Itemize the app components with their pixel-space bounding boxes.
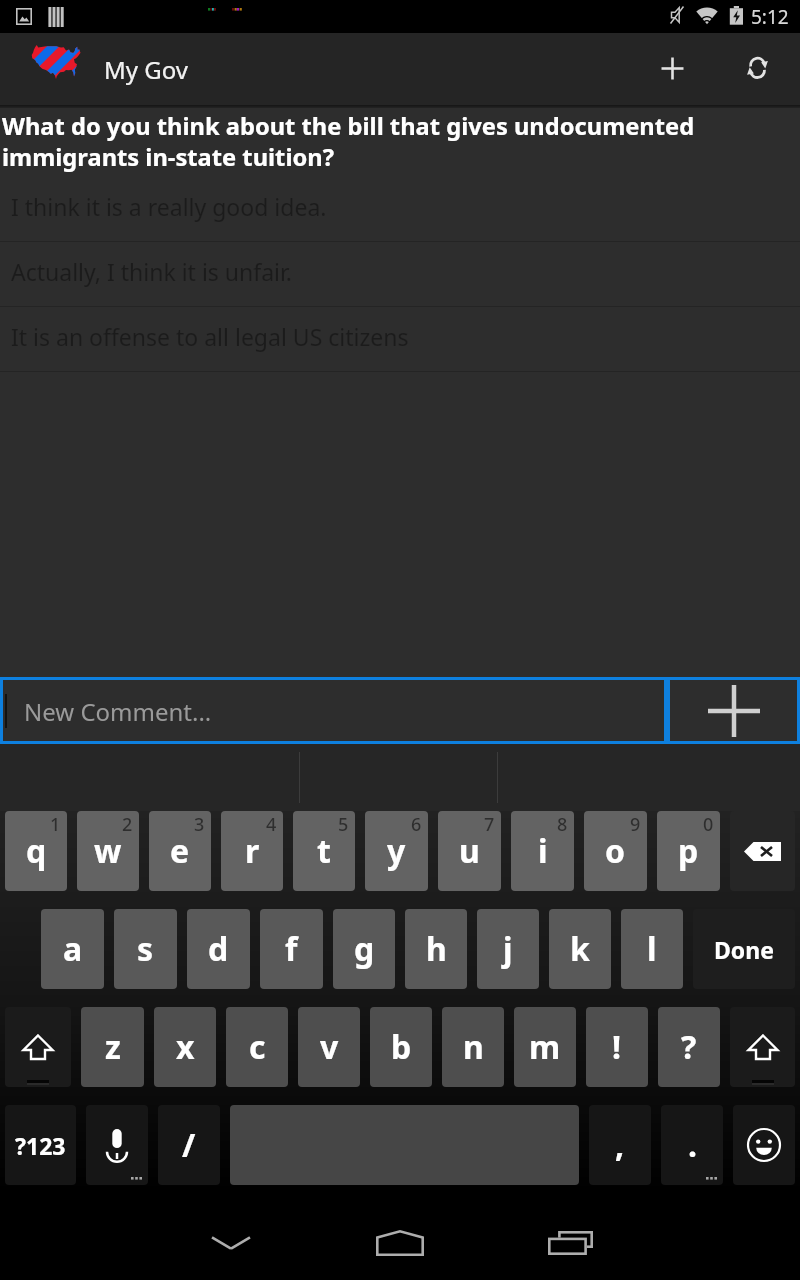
- staticText: 4: [266, 812, 277, 837]
- staticText: .: [688, 1123, 697, 1167]
- staticText: 5:12: [751, 4, 789, 30]
- staticText: What do you think about the bill that gi…: [2, 110, 796, 172]
- button[interactable]: u: [438, 811, 501, 891]
- staticText: Actually, I think it is unfair.: [11, 256, 292, 287]
- staticText: 9: [630, 812, 641, 837]
- button[interactable]: Done: [693, 909, 795, 989]
- staticText: y: [387, 829, 406, 873]
- staticText: 8: [557, 812, 568, 837]
- staticText: w: [94, 829, 122, 873]
- button[interactable]: f: [260, 909, 323, 989]
- button[interactable]: g: [333, 909, 395, 989]
- button[interactable]: t: [293, 811, 355, 891]
- button[interactable]: Add: [629, 33, 715, 103]
- button[interactable]: m: [514, 1007, 576, 1087]
- staticText: n: [463, 1025, 484, 1069]
- staticText: x: [176, 1025, 195, 1069]
- button[interactable]: e: [149, 811, 211, 891]
- staticText: ?123: [15, 1130, 66, 1161]
- button[interactable]: y: [365, 811, 428, 891]
- button[interactable]: Hide keyboard: [171, 1198, 291, 1280]
- staticText: r: [245, 829, 260, 873]
- button[interactable]: a: [41, 909, 104, 989]
- button[interactable]: x: [154, 1007, 216, 1087]
- staticText: u: [459, 829, 480, 873]
- staticText: m: [529, 1025, 561, 1069]
- staticText: Done: [714, 934, 774, 965]
- staticText: o: [605, 829, 626, 873]
- button[interactable]: .: [661, 1105, 723, 1185]
- staticText: p: [678, 829, 699, 873]
- button[interactable]: Home: [340, 1198, 460, 1280]
- button[interactable]: h: [405, 909, 467, 989]
- button[interactable]: z: [81, 1007, 144, 1087]
- button[interactable]: Refresh: [714, 33, 800, 103]
- staticText: 6: [411, 812, 422, 837]
- staticText: ?: [681, 1025, 697, 1069]
- button[interactable]: r: [221, 811, 283, 891]
- staticText: c: [249, 1025, 266, 1069]
- staticText: f: [285, 927, 298, 971]
- button[interactable]: [730, 811, 795, 891]
- button[interactable]: [5, 1007, 71, 1087]
- button[interactable]: ?: [658, 1007, 720, 1087]
- staticText: k: [570, 927, 590, 971]
- button[interactable]: !: [586, 1007, 648, 1087]
- button[interactable]: v: [298, 1007, 360, 1087]
- button[interactable]: [86, 1105, 148, 1185]
- button[interactable]: p: [657, 811, 720, 891]
- staticText: New Comment...: [24, 695, 212, 728]
- staticText: 5: [338, 812, 349, 837]
- staticText: s: [137, 927, 154, 971]
- staticText: /: [182, 1123, 196, 1167]
- button[interactable]: d: [187, 909, 250, 989]
- button[interactable]: o: [584, 811, 647, 891]
- button[interactable]: k: [549, 909, 611, 989]
- button[interactable]: q: [5, 811, 67, 891]
- button[interactable]: b: [370, 1007, 432, 1087]
- button[interactable]: n: [442, 1007, 504, 1087]
- button[interactable]: i: [511, 811, 574, 891]
- staticText: a: [63, 927, 83, 971]
- button[interactable]: Recent apps: [511, 1198, 631, 1280]
- staticText: j: [503, 927, 513, 971]
- staticText: 2: [122, 812, 133, 837]
- staticText: 3: [194, 812, 205, 837]
- staticText: q: [26, 829, 47, 873]
- staticText: d: [208, 927, 229, 971]
- staticText: b: [391, 1025, 412, 1069]
- staticText: 7: [484, 812, 495, 837]
- button[interactable]: Post comment: [667, 677, 800, 744]
- staticText: z: [105, 1025, 121, 1069]
- staticText: It is an offense to all legal US citizen…: [11, 321, 409, 352]
- button[interactable]: w: [77, 811, 139, 891]
- staticText: h: [426, 927, 447, 971]
- button[interactable]: ,: [589, 1105, 651, 1185]
- staticText: My Gov: [104, 53, 188, 86]
- button[interactable]: [733, 1105, 795, 1185]
- staticText: i: [538, 829, 548, 873]
- staticText: l: [647, 927, 657, 971]
- button[interactable]: /: [158, 1105, 220, 1185]
- staticText: !: [612, 1025, 622, 1069]
- button[interactable]: l: [621, 909, 683, 989]
- staticText: v: [320, 1025, 339, 1069]
- button[interactable]: [730, 1007, 795, 1087]
- staticText: ,: [615, 1123, 625, 1167]
- staticText: e: [170, 829, 190, 873]
- staticText: g: [354, 927, 375, 971]
- button[interactable]: s: [114, 909, 177, 989]
- button[interactable]: ?123: [5, 1105, 76, 1185]
- button[interactable]: j: [477, 909, 539, 989]
- staticText: t: [317, 829, 331, 873]
- button[interactable]: c: [226, 1007, 288, 1087]
- staticText: 0: [703, 812, 714, 837]
- button[interactable]: New Comment...: [0, 677, 667, 744]
- staticText: 1: [50, 812, 61, 837]
- staticText: I think it is a really good idea.: [11, 191, 327, 222]
